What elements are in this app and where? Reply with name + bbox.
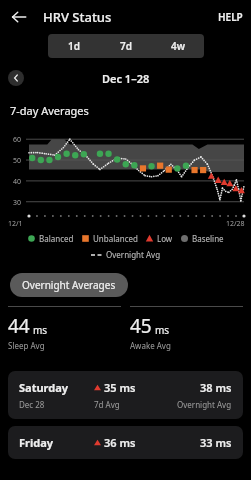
staticText: 45	[130, 313, 152, 339]
staticText: ms	[33, 323, 48, 337]
staticText: Unbalanced	[93, 233, 138, 244]
staticText: Baseline	[192, 233, 224, 244]
staticText: 36 ms	[104, 435, 136, 450]
staticText: 4w	[171, 39, 186, 53]
button[interactable]: Saturday	[8, 371, 243, 419]
staticText: 35 ms	[104, 380, 136, 395]
staticText: 12/1	[8, 219, 23, 229]
button[interactable]: 4w	[152, 34, 204, 58]
button[interactable]: 7d	[100, 34, 152, 58]
button[interactable]: Back	[5, 3, 33, 31]
staticText: 7d	[120, 39, 132, 53]
staticText: Awake Avg	[130, 340, 171, 351]
staticText: 1d	[68, 39, 80, 53]
staticText: ms	[155, 323, 170, 337]
staticText: Overnight Avg	[177, 399, 232, 410]
staticText: 50	[13, 156, 22, 166]
staticText: Dec 1–28	[102, 71, 150, 86]
staticText: 44	[8, 313, 30, 339]
staticText: 38 ms	[200, 380, 232, 395]
staticText: Low	[157, 233, 173, 244]
button[interactable]: Previous period	[8, 70, 24, 86]
staticText: Friday	[19, 435, 54, 450]
staticText: Balanced	[39, 233, 74, 244]
button[interactable]: Overnight Averages	[10, 273, 128, 297]
staticText: 33 ms	[200, 435, 232, 450]
staticText: Overnight Avg	[106, 249, 161, 260]
staticText: Overnight Averages	[22, 278, 116, 292]
staticText: Sleep Avg	[8, 340, 45, 351]
staticText: Dec 28	[19, 399, 45, 410]
staticText: 60	[13, 135, 22, 145]
staticText: 7d Avg	[94, 399, 120, 410]
button[interactable]: Friday	[8, 426, 243, 459]
button[interactable]: 1d	[48, 34, 100, 58]
staticText: 12/28	[226, 219, 245, 229]
staticText: 40	[13, 177, 22, 187]
button[interactable]: HELP	[210, 4, 251, 30]
staticText: Saturday	[19, 380, 69, 395]
staticText: HELP	[218, 10, 243, 24]
staticText: 30	[13, 198, 22, 208]
staticText: HRV Status	[43, 8, 112, 26]
staticText: 7-day Averages	[10, 103, 89, 118]
